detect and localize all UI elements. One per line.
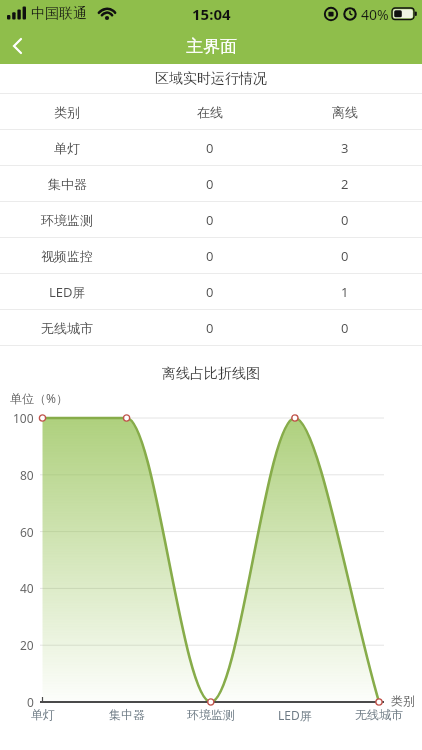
button[interactable]: LED屏 [0, 274, 422, 310]
staticText: 0 [27, 694, 34, 710]
staticText: 离线 [332, 104, 358, 120]
button[interactable]: 集中器 [0, 166, 422, 202]
staticText: 40% [361, 5, 389, 24]
staticText: 2 [341, 175, 349, 193]
staticText: 60 [20, 524, 34, 540]
staticText: 0 [206, 283, 214, 301]
staticText: 集中器 [48, 176, 87, 192]
button[interactable] [0, 28, 36, 64]
button[interactable]: 视频监控 [0, 238, 422, 274]
staticText: 单灯 [31, 707, 55, 722]
staticText: 离线占比折线图 [162, 365, 260, 383]
button[interactable]: 类别 [0, 94, 422, 130]
button[interactable]: 无线城市 [0, 310, 422, 346]
staticText: 0 [206, 247, 214, 265]
staticText: 0 [341, 319, 349, 337]
staticText: LED屏 [49, 283, 86, 301]
staticText: 无线城市 [355, 707, 403, 722]
staticText: 15:04 [192, 4, 231, 24]
staticText: 环境监测 [41, 212, 93, 228]
staticText: 80 [20, 467, 34, 483]
staticText: 40 [20, 580, 34, 596]
staticText: 0 [206, 211, 214, 229]
staticText: 集中器 [109, 707, 145, 722]
button[interactable]: 单灯 [0, 130, 422, 166]
staticText: 20 [20, 637, 34, 653]
staticText: 主界面 [186, 36, 237, 57]
staticText: 类别 [54, 104, 80, 120]
staticText: 视频监控 [41, 248, 93, 264]
staticText: 中国联通 [31, 5, 87, 23]
staticText: 单灯 [54, 140, 80, 156]
button[interactable]: 环境监测 [0, 202, 422, 238]
staticText: 0 [341, 247, 349, 265]
staticText: 0 [341, 211, 349, 229]
staticText: 类别 [391, 693, 415, 708]
staticText: 0 [206, 175, 214, 193]
staticText: 单位（%） [10, 390, 68, 406]
staticText: 区域实时运行情况 [155, 70, 267, 88]
staticText: 无线城市 [41, 320, 93, 336]
staticText: LED屏 [278, 707, 312, 723]
staticText: 3 [341, 139, 349, 157]
staticText: 环境监测 [187, 707, 235, 722]
staticText: 0 [206, 319, 214, 337]
staticText: 1 [341, 283, 349, 301]
staticText: 100 [13, 410, 34, 426]
staticText: 在线 [197, 104, 223, 120]
staticText: 0 [206, 139, 214, 157]
